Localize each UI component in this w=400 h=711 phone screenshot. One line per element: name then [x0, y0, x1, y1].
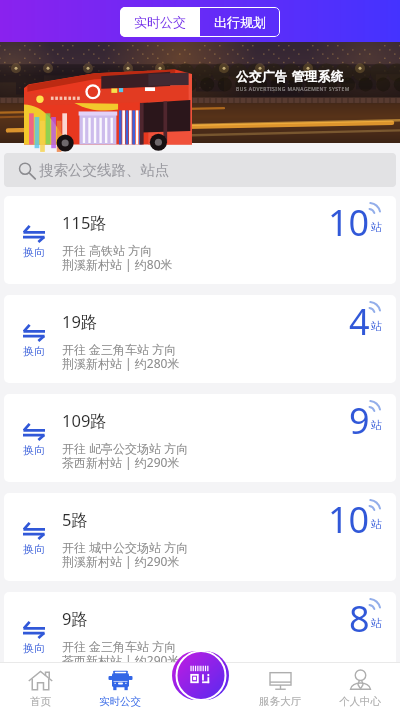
staticText: 站 [371, 319, 382, 333]
button[interactable]: 换向 [4, 493, 396, 581]
button[interactable]: 个人中心 [320, 662, 400, 711]
button[interactable]: 换向 [15, 323, 52, 358]
staticText: 个人中心 [339, 695, 381, 708]
button[interactable]: 换向 [4, 196, 396, 284]
staticText: 19路 [62, 310, 98, 333]
staticText: 5路 [62, 508, 88, 531]
button[interactable]: 换向 [4, 295, 396, 383]
button[interactable]: 换向 [15, 422, 52, 457]
staticText: 10 [328, 495, 370, 544]
staticText: 实时公交 [99, 695, 141, 708]
staticText: 服务大厅 [259, 695, 301, 708]
button[interactable]: 换向 [4, 394, 396, 482]
staticText: 站 [371, 418, 382, 432]
staticText: 8 [349, 594, 370, 643]
staticText: 开往 金三角车站 方向 茶西新村站 | 约290米 [62, 638, 180, 669]
staticText: 站 [371, 616, 382, 630]
staticText: 9路 [62, 607, 88, 630]
staticText: 首页 [30, 695, 51, 708]
staticText: 站 [371, 517, 382, 531]
button[interactable]: 换向 [4, 592, 396, 680]
staticText: 出行规划 [214, 14, 266, 30]
button[interactable]: 出行规划 [200, 7, 280, 37]
staticText: BUS ADVERTISING MANAGEMENT SYSTEM [236, 86, 350, 93]
staticText: 开往 屺亭公交场站 方向 茶西新村站 | 约290米 [62, 440, 189, 471]
staticText: 换向 [23, 344, 45, 358]
staticText: 换向 [23, 245, 45, 259]
button[interactable]: 服务大厅 [240, 662, 320, 711]
staticText: 开往 高铁站 方向 荆溪新村站 | 约80米 [62, 242, 173, 273]
staticText: 开往 金三角车站 方向 荆溪新村站 | 约280米 [62, 341, 180, 372]
staticText: 9 [349, 396, 370, 445]
button[interactable]: 实时公交 [120, 7, 200, 37]
button[interactable]: 实时公交 [80, 662, 160, 711]
button[interactable]: 搜索公交线路、站点 [4, 153, 396, 187]
staticText: 换向 [23, 443, 45, 457]
staticText: 换向 [23, 641, 45, 655]
button[interactable]: 换向 [15, 224, 52, 259]
staticText: 开往 城中公交场站 方向 荆溪新村站 | 约290米 [62, 539, 189, 570]
staticText: 换向 [23, 542, 45, 556]
staticText: 109路 [62, 409, 107, 432]
staticText: 公交广告 管理系统 [236, 68, 344, 85]
button[interactable]: 扫一扫 [172, 651, 229, 700]
staticText: 4 [349, 297, 370, 346]
staticText: 实时公交 [134, 14, 186, 30]
staticText: 站 [371, 220, 382, 234]
button[interactable]: 首页 [0, 662, 80, 711]
staticText: 115路 [62, 211, 107, 234]
staticText: 搜索公交线路、站点 [39, 161, 170, 179]
staticText: 10 [328, 198, 370, 247]
button[interactable]: 换向 [15, 620, 52, 655]
button[interactable]: 换向 [15, 521, 52, 556]
